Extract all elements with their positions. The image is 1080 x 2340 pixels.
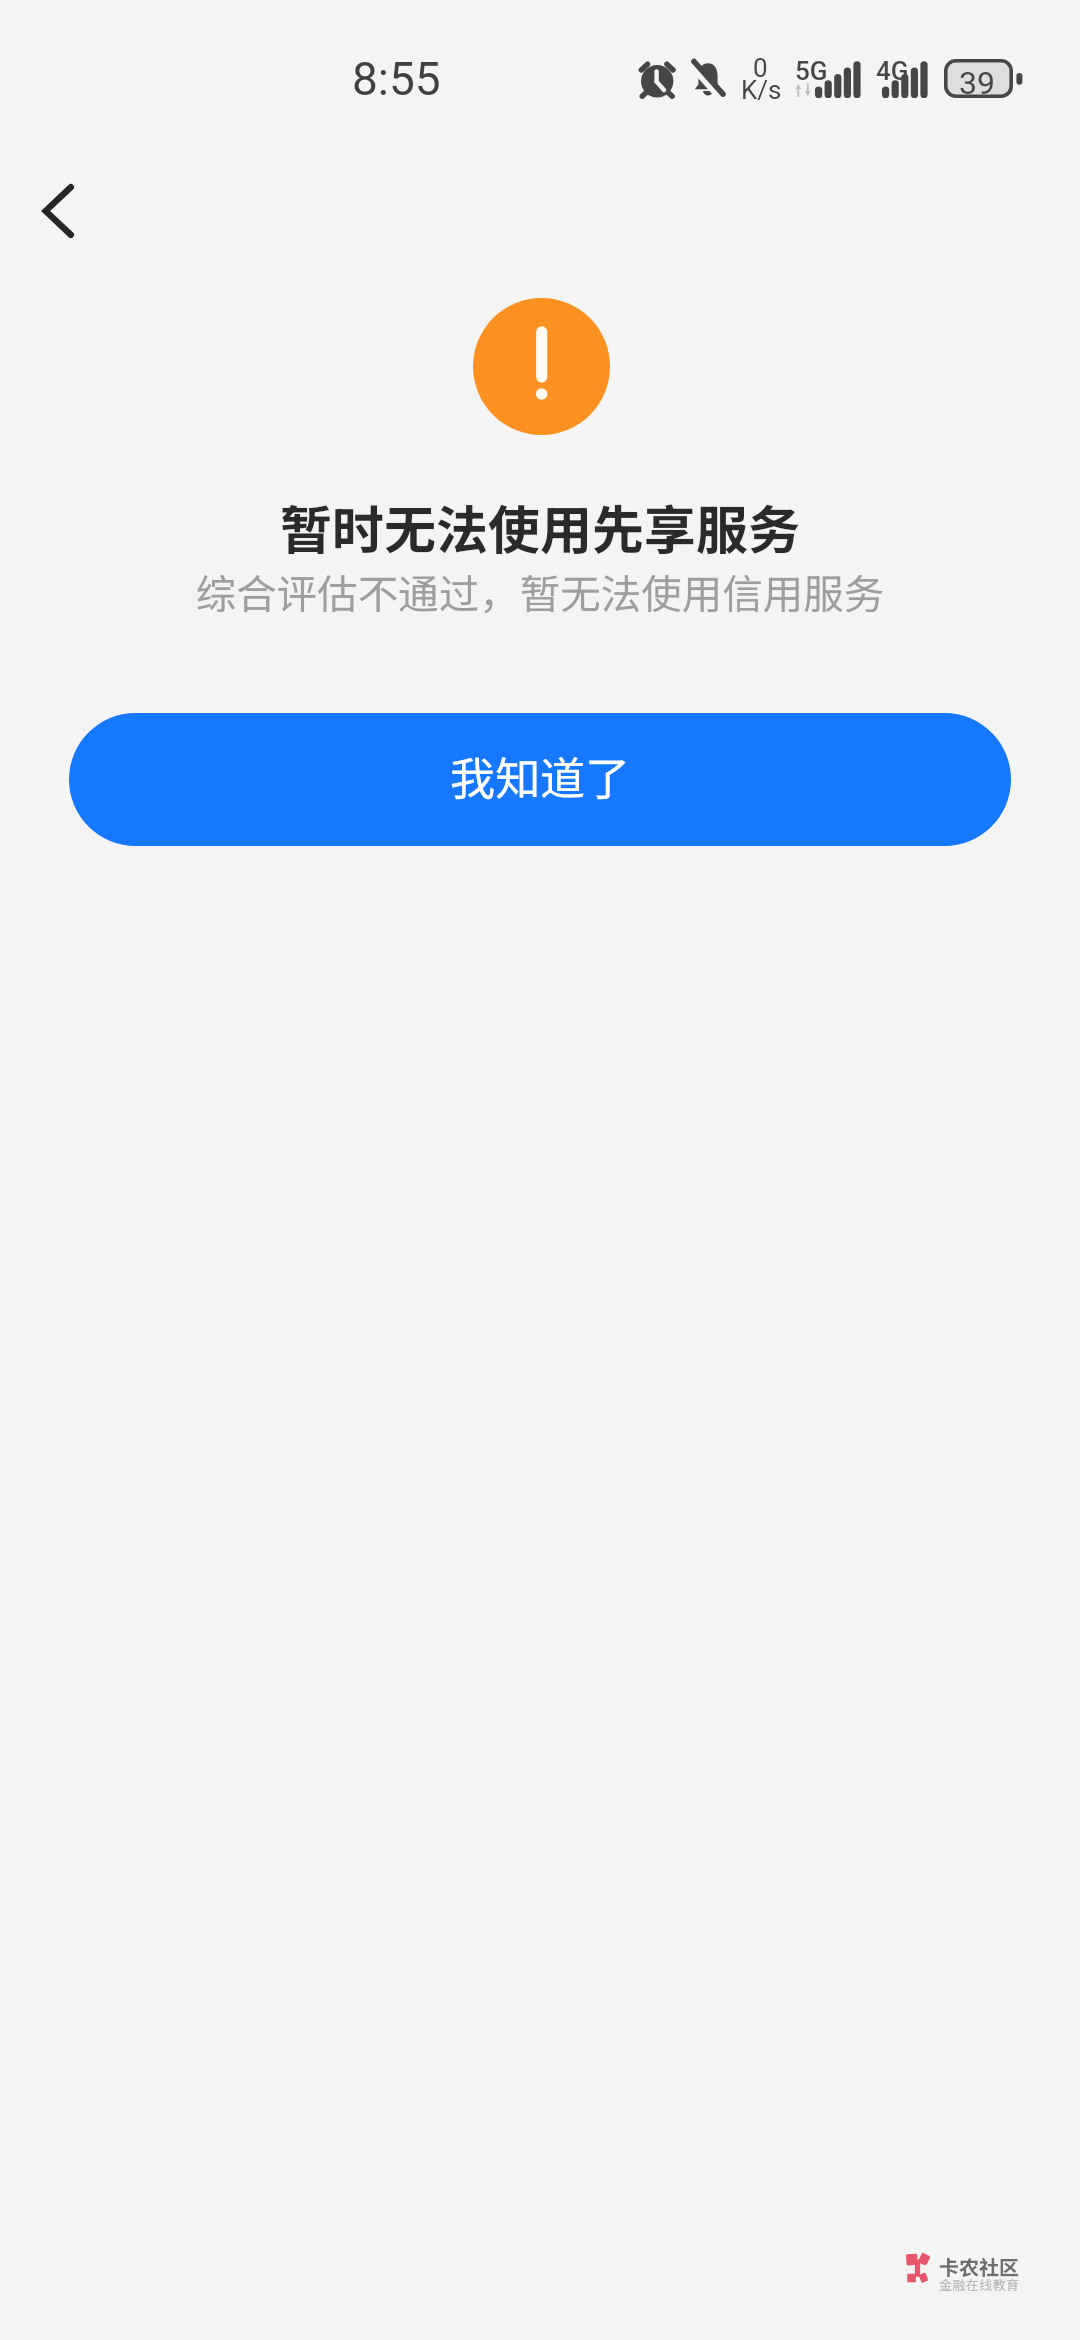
button[interactable]: 我知道了 [69,713,1011,846]
staticText: 我知道了 [450,743,631,808]
staticText: 综合评估不通过，暂无法使用信用服务 [0,562,1080,621]
staticText: 8:55 [352,52,441,106]
staticText: 卡农社区 [939,2252,1019,2281]
staticText: 金融在线教育 [939,2275,1020,2294]
staticText: 暂时无法使用先享服务 [0,489,1080,564]
staticText: K/s [741,75,782,105]
staticText: 4G [876,56,909,86]
staticText: 39 [959,64,995,102]
button[interactable]: Back [14,167,102,255]
staticText: 0 [753,53,768,83]
staticText: 5G [795,56,828,86]
